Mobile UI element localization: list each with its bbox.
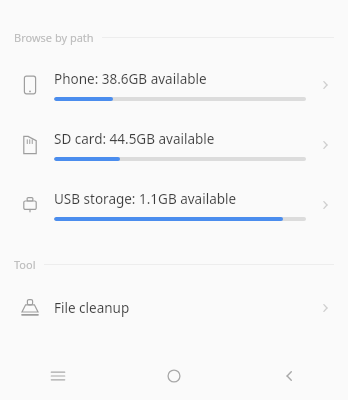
other: File cleanup <box>20 298 40 318</box>
staticText: Phone: 38.6GB available <box>54 70 207 88</box>
other: Phone <box>20 75 40 95</box>
staticText: SD card: 44.5GB available <box>54 130 215 148</box>
other: USB storage <box>20 195 40 215</box>
staticText: Browse by path <box>14 30 94 45</box>
staticText: Tool <box>14 257 36 272</box>
staticText: File cleanup <box>54 299 316 317</box>
button[interactable]: Home <box>116 352 232 400</box>
button[interactable]: Phone <box>0 55 348 115</box>
button[interactable]: File cleanup <box>0 282 348 334</box>
other: SD card <box>20 135 40 155</box>
button[interactable]: Recents <box>0 352 116 400</box>
staticText: USB storage: 1.1GB available <box>54 190 237 208</box>
button[interactable]: Back <box>232 352 348 400</box>
button[interactable]: USB storage <box>0 175 348 235</box>
button[interactable]: SD card <box>0 115 348 175</box>
